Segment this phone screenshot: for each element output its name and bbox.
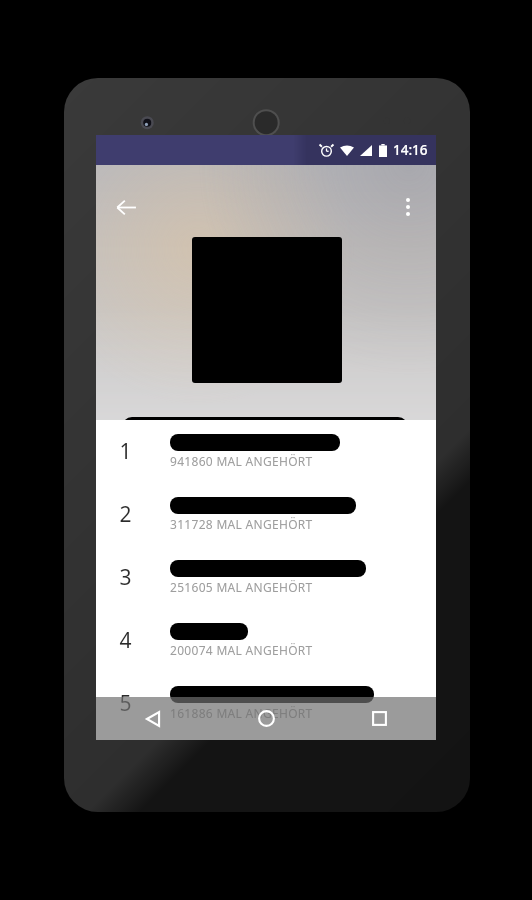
staticText: 2 [119,500,132,529]
button[interactable]: Home [210,697,323,740]
button[interactable]: Recent apps [323,697,436,740]
staticText: 5 [119,689,132,718]
staticText: 3 [119,563,132,592]
button[interactable]: More options [386,185,430,229]
button[interactable]: 1 [96,420,436,483]
staticText: 941860 MAL ANGEHÖRT [170,453,313,469]
staticText: 1 [119,437,132,466]
staticText: 4 [119,626,132,655]
button[interactable]: 3 [96,546,436,609]
staticText: 251605 MAL ANGEHÖRT [170,579,313,595]
staticText: 311728 MAL ANGEHÖRT [170,516,313,532]
staticText: 161886 MAL ANGEHÖRT [170,705,313,721]
button[interactable]: 4 [96,609,436,672]
button[interactable]: 2 [96,483,436,546]
button[interactable]: 5 [96,672,436,735]
button[interactable]: Back [104,185,148,229]
staticText: 14:16 [393,141,428,159]
button[interactable]: Back [96,697,210,740]
staticText: 200074 MAL ANGEHÖRT [170,642,313,658]
